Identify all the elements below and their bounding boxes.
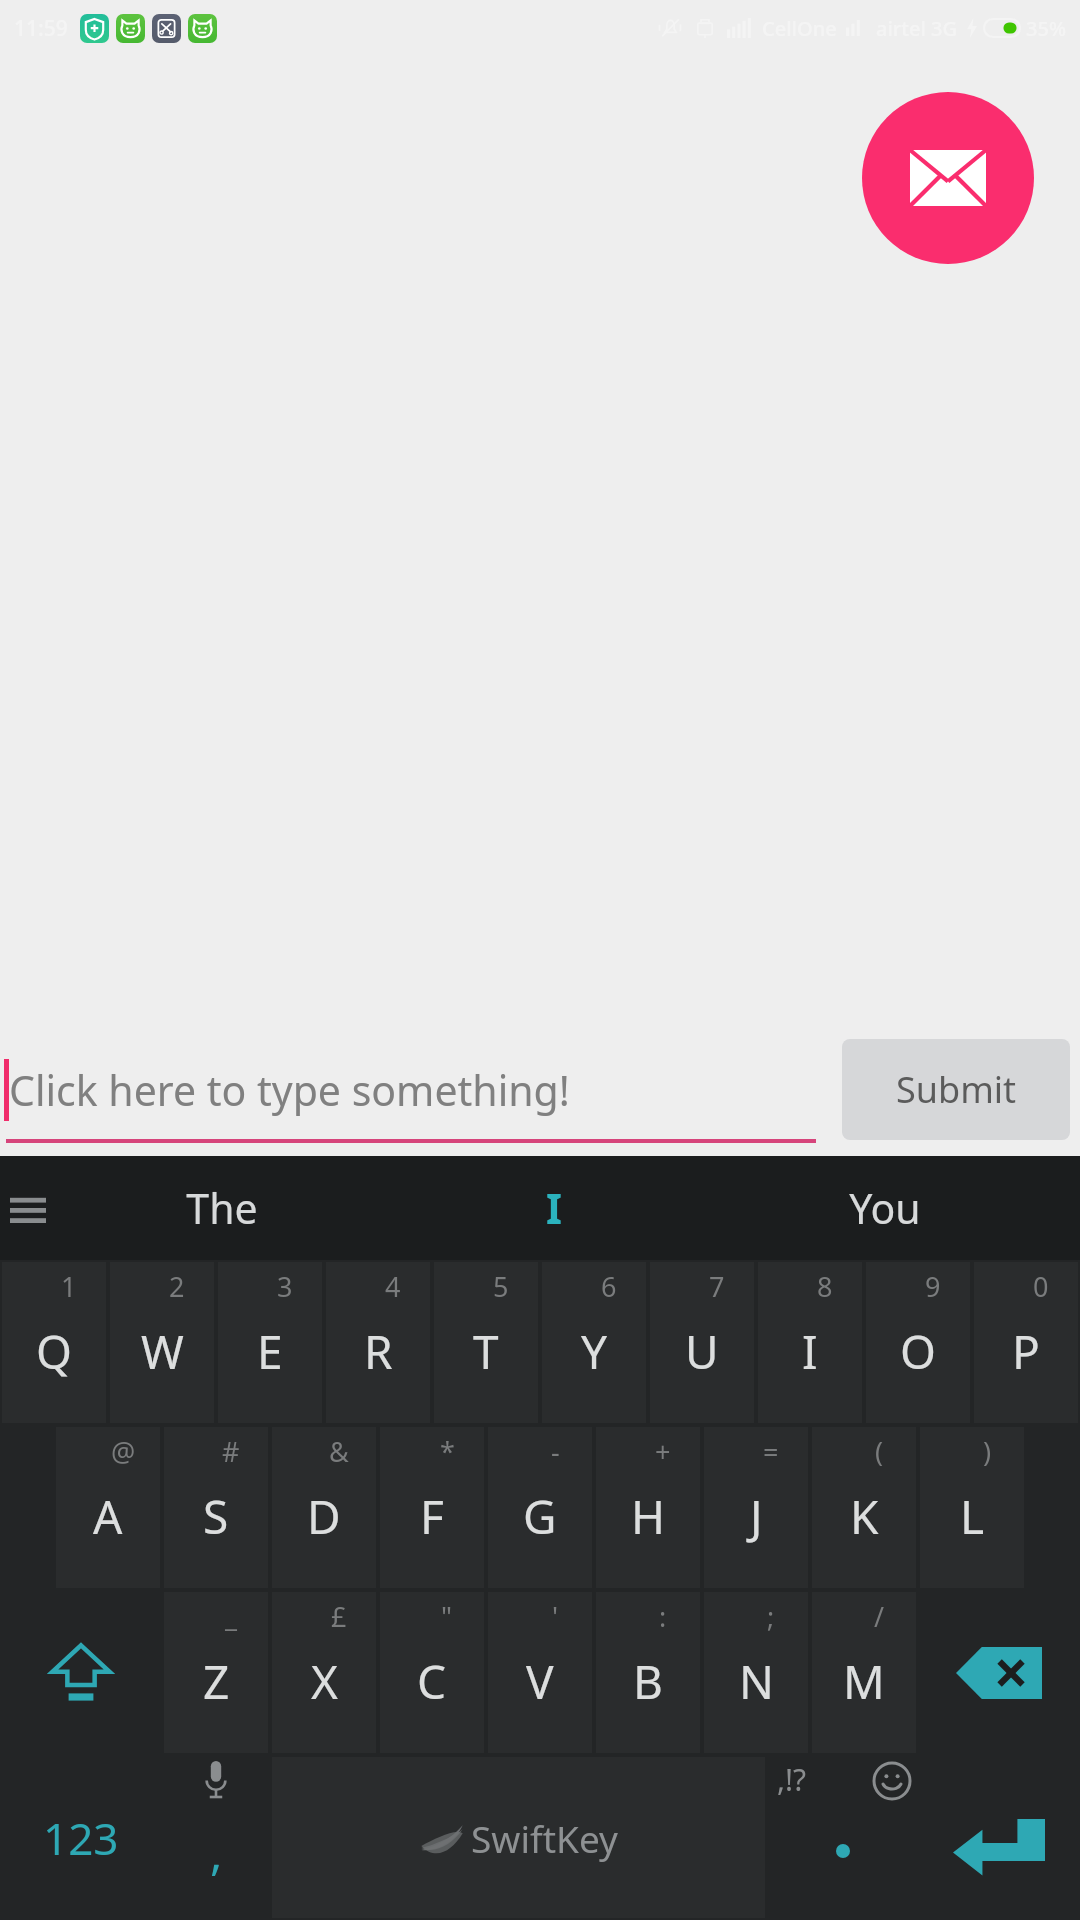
staticText: N bbox=[739, 1650, 774, 1713]
staticText: 4 bbox=[385, 1268, 401, 1305]
button[interactable]: Menu bbox=[0, 1156, 56, 1260]
staticText: 2 bbox=[169, 1268, 185, 1305]
button[interactable]: Shift bbox=[2, 1592, 160, 1753]
staticText: 3 bbox=[277, 1268, 293, 1305]
staticText: K bbox=[850, 1485, 879, 1548]
staticText: 8 bbox=[817, 1268, 833, 1305]
button[interactable]: 4 bbox=[326, 1262, 430, 1423]
staticText: You bbox=[849, 1180, 921, 1236]
staticText: Q bbox=[36, 1320, 72, 1383]
button[interactable]: Space bbox=[272, 1757, 765, 1918]
staticText: - bbox=[551, 1433, 560, 1470]
button[interactable]: 9 bbox=[866, 1262, 970, 1423]
staticText: SwiftKey bbox=[471, 1813, 618, 1863]
button[interactable]: 0 bbox=[974, 1262, 1078, 1423]
staticText: 5 bbox=[493, 1268, 509, 1305]
staticText: Y bbox=[581, 1320, 608, 1383]
button[interactable]: " bbox=[380, 1592, 484, 1753]
staticText: ' bbox=[552, 1598, 559, 1635]
button[interactable]: 5 bbox=[434, 1262, 538, 1423]
button[interactable]: 3 bbox=[218, 1262, 322, 1423]
staticText: D bbox=[307, 1485, 341, 1548]
button[interactable]: - bbox=[488, 1427, 592, 1588]
button[interactable]: ; bbox=[704, 1592, 808, 1753]
staticText: U bbox=[685, 1320, 719, 1383]
staticText: The bbox=[186, 1180, 258, 1236]
button[interactable]: You bbox=[719, 1156, 1050, 1260]
button[interactable]: Backspace bbox=[920, 1592, 1078, 1753]
button[interactable]: Click here to type something! bbox=[0, 1023, 828, 1156]
button[interactable]: : bbox=[596, 1592, 700, 1753]
staticText: Click here to type something! bbox=[9, 1062, 570, 1118]
staticText: Submit bbox=[896, 1065, 1017, 1114]
staticText: J bbox=[750, 1485, 763, 1548]
staticText: @ bbox=[111, 1433, 136, 1470]
button[interactable]: & bbox=[272, 1427, 376, 1588]
staticText: V bbox=[526, 1650, 554, 1713]
button[interactable]: ( bbox=[812, 1427, 916, 1588]
staticText: = bbox=[763, 1433, 779, 1470]
button[interactable]: The bbox=[56, 1156, 388, 1260]
button[interactable]: @ bbox=[56, 1427, 160, 1588]
button[interactable]: * bbox=[380, 1427, 484, 1588]
button[interactable]: 7 bbox=[650, 1262, 754, 1423]
staticText: , bbox=[210, 1821, 223, 1884]
button[interactable]: Comma and voice input bbox=[164, 1757, 268, 1918]
staticText: ( bbox=[875, 1433, 884, 1470]
staticText: # bbox=[222, 1433, 240, 1470]
button[interactable]: _ bbox=[164, 1592, 268, 1753]
staticText: 7 bbox=[709, 1268, 725, 1305]
button[interactable]: ) bbox=[920, 1427, 1024, 1588]
staticText: P bbox=[1012, 1320, 1040, 1383]
button[interactable]: ' bbox=[488, 1592, 592, 1753]
staticText: Z bbox=[203, 1650, 230, 1713]
staticText: " bbox=[441, 1598, 453, 1635]
button[interactable]: 8 bbox=[758, 1262, 862, 1423]
button[interactable]: £ bbox=[272, 1592, 376, 1753]
staticText: + bbox=[655, 1433, 671, 1470]
staticText: / bbox=[874, 1598, 885, 1635]
button[interactable]: + bbox=[596, 1427, 700, 1588]
staticText: ,!? bbox=[777, 1759, 807, 1800]
staticText: ; bbox=[767, 1598, 775, 1635]
staticText: L bbox=[960, 1485, 985, 1548]
button[interactable]: = bbox=[704, 1427, 808, 1588]
button[interactable]: Compose mail bbox=[862, 92, 1034, 264]
staticText: M bbox=[843, 1650, 885, 1713]
button[interactable]: Submit bbox=[842, 1039, 1070, 1140]
staticText: T bbox=[473, 1320, 499, 1383]
staticText: X bbox=[311, 1650, 338, 1713]
staticText: * bbox=[440, 1433, 455, 1470]
staticText: B bbox=[633, 1650, 663, 1713]
button[interactable]: 1 bbox=[2, 1262, 106, 1423]
staticText: : bbox=[659, 1598, 667, 1635]
staticText: H bbox=[631, 1485, 666, 1548]
staticText: _ bbox=[225, 1598, 237, 1635]
button[interactable]: 2 bbox=[110, 1262, 214, 1423]
staticText: £ bbox=[331, 1598, 347, 1635]
staticText: & bbox=[329, 1433, 349, 1470]
staticText: 6 bbox=[601, 1268, 617, 1305]
button[interactable]: # bbox=[164, 1427, 268, 1588]
button[interactable]: I bbox=[388, 1156, 719, 1260]
staticText: E bbox=[257, 1320, 283, 1383]
staticText: I bbox=[802, 1320, 818, 1383]
staticText: I bbox=[546, 1180, 562, 1236]
staticText: A bbox=[93, 1485, 123, 1548]
staticText: 9 bbox=[925, 1268, 941, 1305]
button[interactable]: / bbox=[812, 1592, 916, 1753]
staticText: F bbox=[420, 1485, 444, 1548]
staticText: 0 bbox=[1033, 1268, 1049, 1305]
staticText: C bbox=[417, 1650, 447, 1713]
button[interactable]: Period and emoji bbox=[769, 1757, 916, 1918]
button[interactable]: 123 bbox=[2, 1757, 160, 1918]
button[interactable]: Enter bbox=[920, 1757, 1078, 1918]
staticText: O bbox=[900, 1320, 936, 1383]
button[interactable]: 6 bbox=[542, 1262, 646, 1423]
staticText: W bbox=[141, 1320, 184, 1383]
staticText: R bbox=[364, 1320, 393, 1383]
